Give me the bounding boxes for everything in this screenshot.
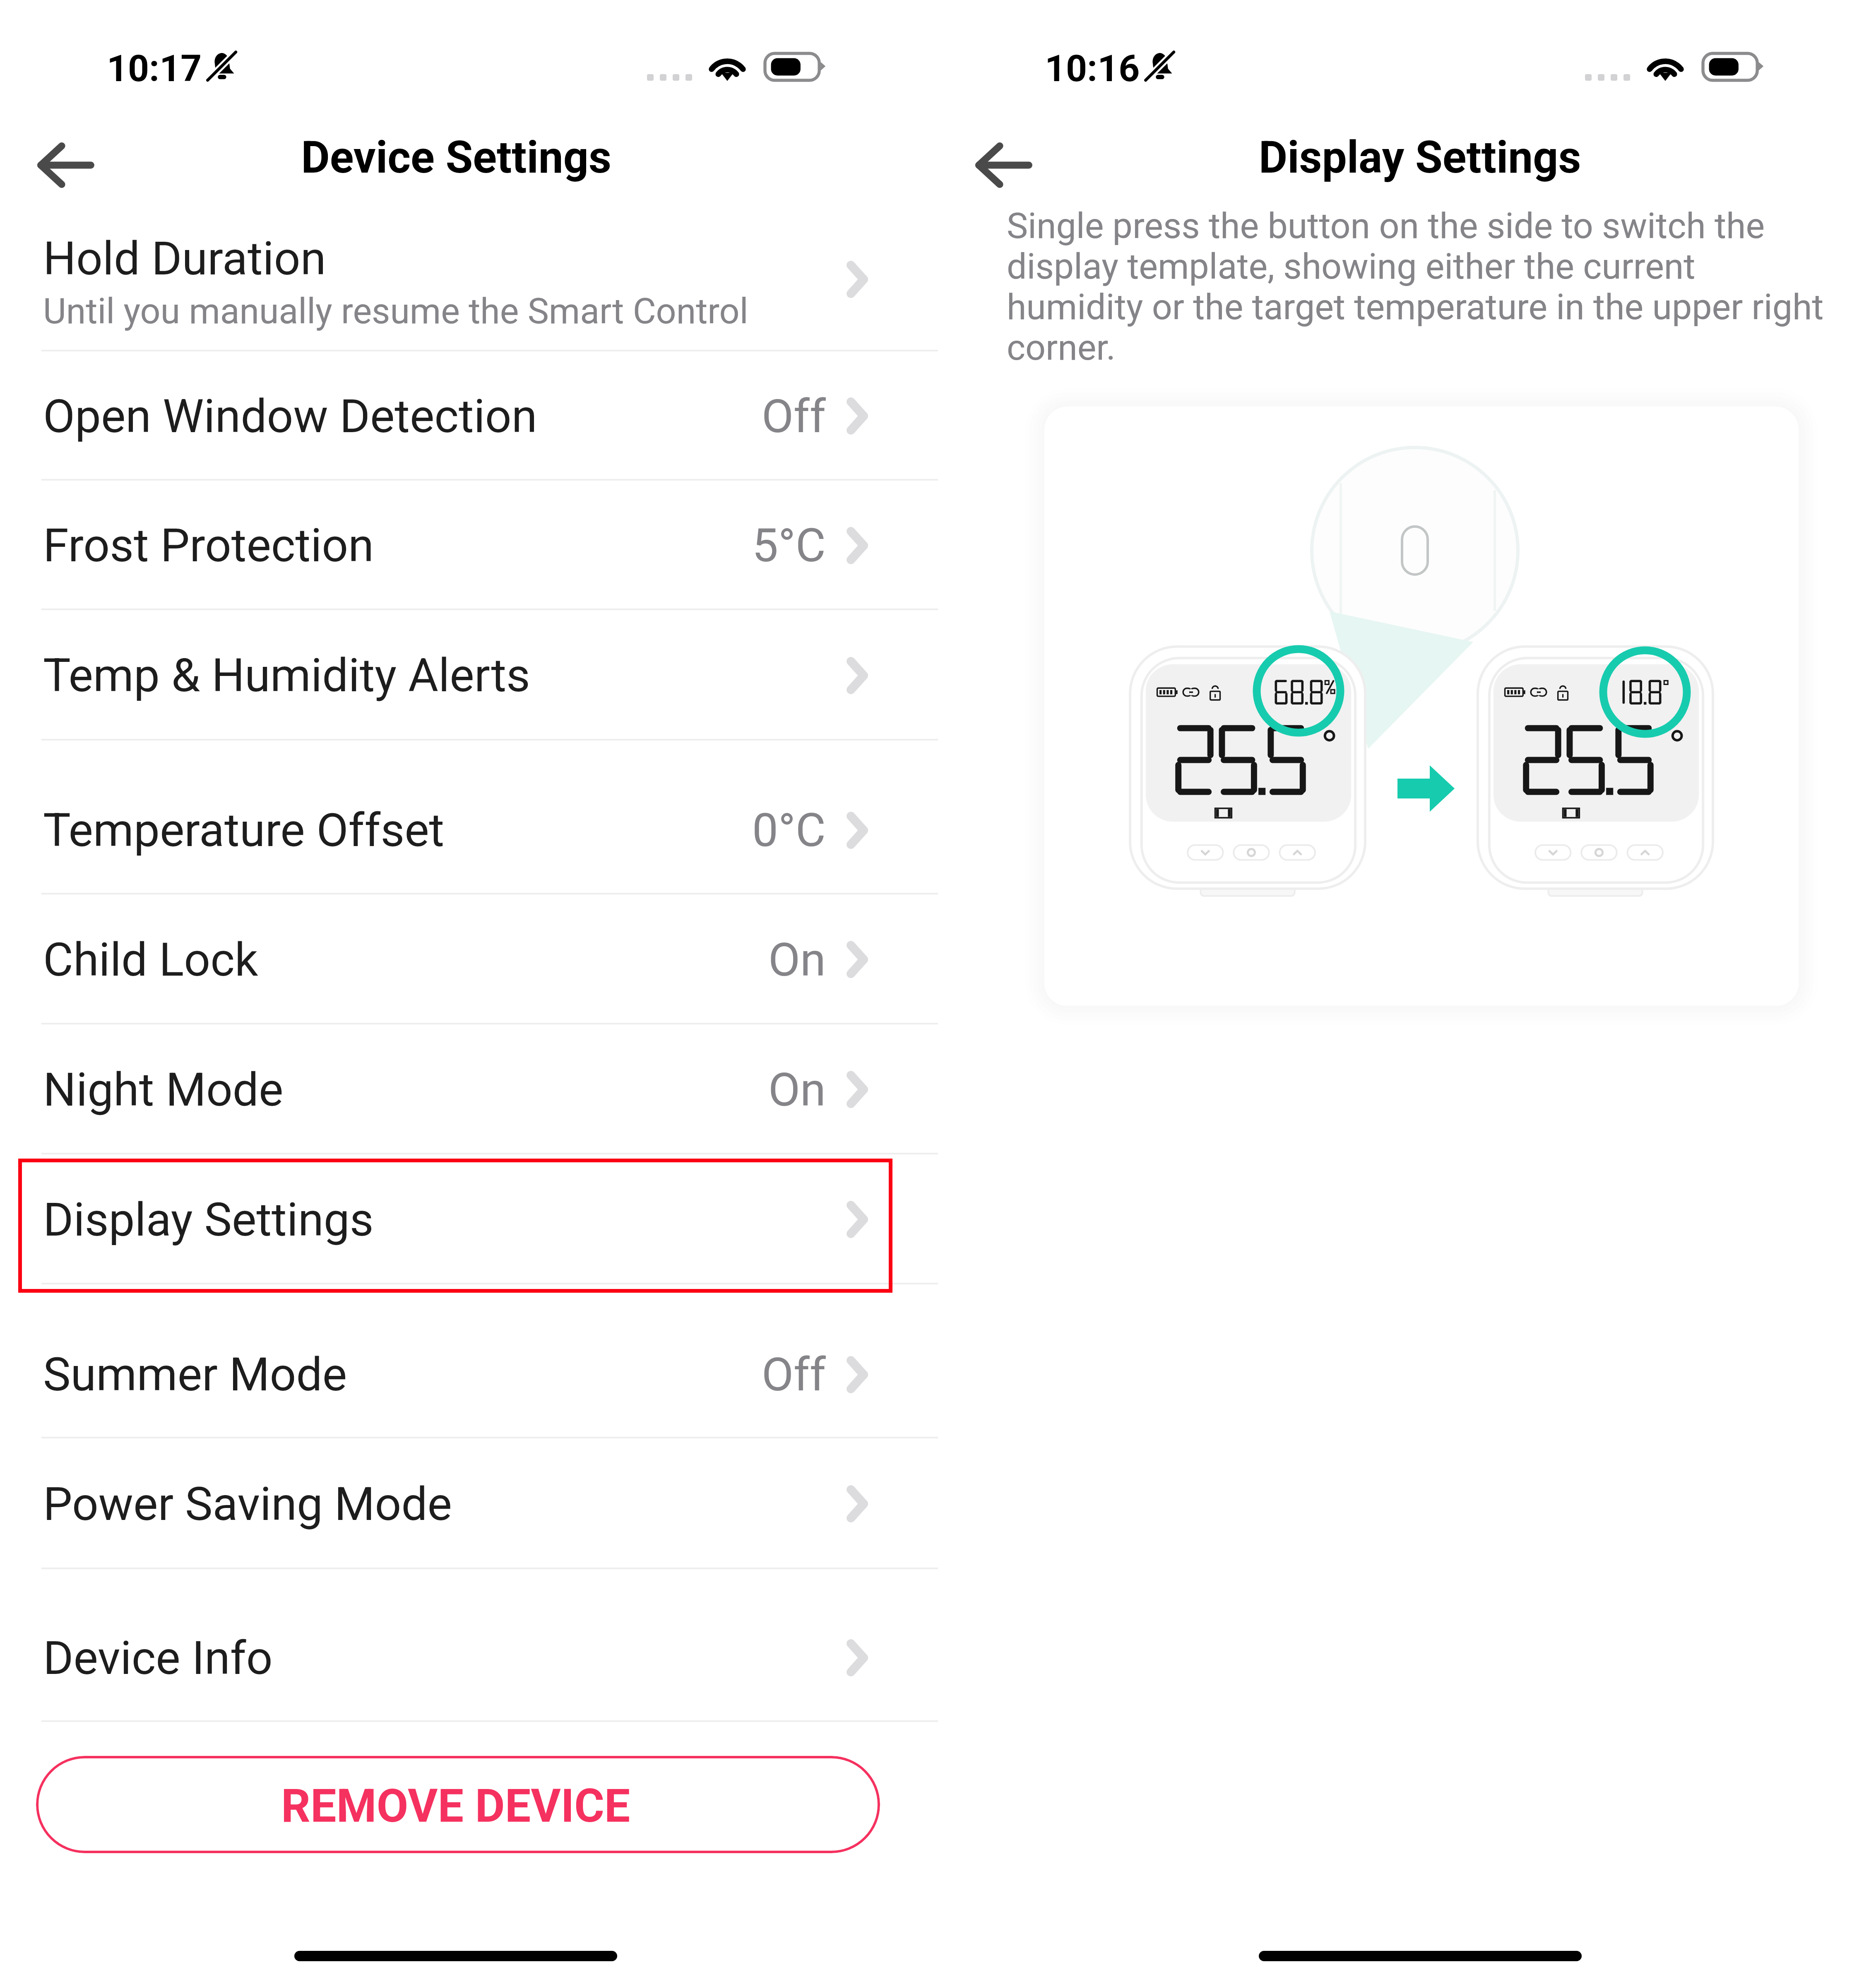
button[interactable]: Hold Duration: [0, 222, 938, 351]
staticText: 0°C: [752, 803, 826, 857]
button[interactable]: REMOVE DEVICE: [36, 1756, 880, 1853]
staticText: Temperature Offset: [43, 803, 445, 857]
staticText: Night Mode: [43, 1063, 284, 1117]
staticText: Single press the button on the side to s…: [1007, 205, 1833, 368]
staticText: REMOVE DEVICE: [281, 1779, 630, 1833]
staticText: Hold Duration: [43, 231, 326, 286]
button[interactable]: Frost Protection: [0, 481, 938, 610]
button[interactable]: Child Lock: [0, 895, 938, 1024]
staticText: Child Lock: [43, 933, 258, 987]
staticText: Until you manually resume the Smart Cont…: [43, 290, 748, 332]
button[interactable]: Temp & Humidity Alerts: [0, 610, 938, 741]
button[interactable]: Back: [963, 126, 1045, 204]
staticText: Power Saving Mode: [43, 1477, 452, 1531]
button[interactable]: Device Info: [0, 1594, 938, 1722]
staticText: 5°C: [752, 518, 826, 572]
staticText: On: [768, 933, 826, 987]
staticText: On: [768, 1063, 826, 1117]
staticText: Frost Protection: [43, 518, 374, 572]
button[interactable]: Temperature Offset: [0, 766, 938, 895]
staticText: Open Window Detection: [43, 389, 537, 443]
staticText: Summer Mode: [43, 1347, 347, 1402]
button[interactable]: Back: [25, 126, 107, 204]
staticText: Device Info: [43, 1631, 273, 1685]
button[interactable]: Display Settings: [0, 1154, 938, 1284]
button[interactable]: Power Saving Mode: [0, 1438, 938, 1569]
staticText: Off: [762, 389, 826, 443]
staticText: Off: [762, 1347, 826, 1402]
staticText: Display Settings: [43, 1193, 374, 1247]
staticText: 10:16: [1045, 47, 1140, 90]
button[interactable]: Summer Mode: [0, 1311, 938, 1438]
button[interactable]: Night Mode: [0, 1024, 938, 1154]
staticText: Display Settings: [951, 132, 1876, 183]
staticText: Device Settings: [0, 132, 925, 183]
staticText: 10:17: [107, 47, 202, 90]
button[interactable]: Open Window Detection: [0, 351, 938, 481]
staticText: Temp & Humidity Alerts: [43, 648, 530, 702]
